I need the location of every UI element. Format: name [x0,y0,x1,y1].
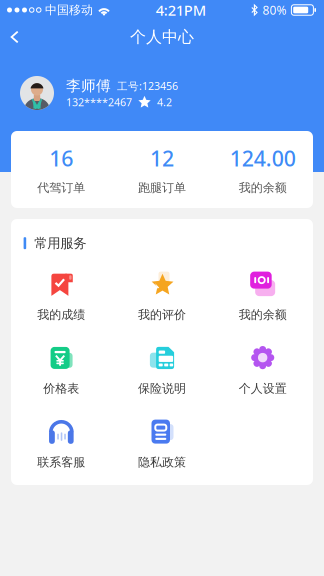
staticText: 4:21PM [156,0,206,20]
staticText: 常用服务 [34,235,86,251]
staticText: 我的成绩 [37,307,85,322]
staticText: 跑腿订单 [138,180,186,195]
staticText: 80% [262,2,286,18]
staticText: 隐私政策 [138,455,186,470]
button[interactable]: 保险说明 [112,345,212,396]
staticText: 我的评价 [138,307,186,322]
button[interactable]: 价格表 [11,345,112,396]
staticText: 保险说明 [138,381,186,396]
button[interactable]: 我的评价 [112,271,212,322]
button[interactable]: 我的成绩 [11,271,112,322]
staticText: 4.2 [157,95,172,109]
staticText: 价格表 [43,381,79,396]
staticText: 中国移动 [45,3,93,17]
button[interactable]: 隐私政策 [112,419,212,470]
staticText: 个人设置 [239,381,287,396]
staticText: 代驾订单 [37,180,85,195]
staticText: 李师傅 [66,77,111,95]
staticText: 124.00 [230,144,296,172]
button[interactable]: 个人设置 [212,345,313,396]
staticText: 联系客服 [37,455,85,470]
button[interactable]: 联系客服 [11,419,112,470]
staticText: 工号:123456 [117,79,178,93]
staticText: 我的余额 [239,180,287,195]
button[interactable]: Back [0,21,33,53]
staticText: 个人中心 [130,27,194,47]
staticText: 我的余额 [239,307,287,322]
button[interactable]: 我的余额 [212,271,313,322]
staticText: 12 [150,144,174,172]
staticText: 132****2467 [66,95,132,109]
staticText: 16 [49,144,73,172]
